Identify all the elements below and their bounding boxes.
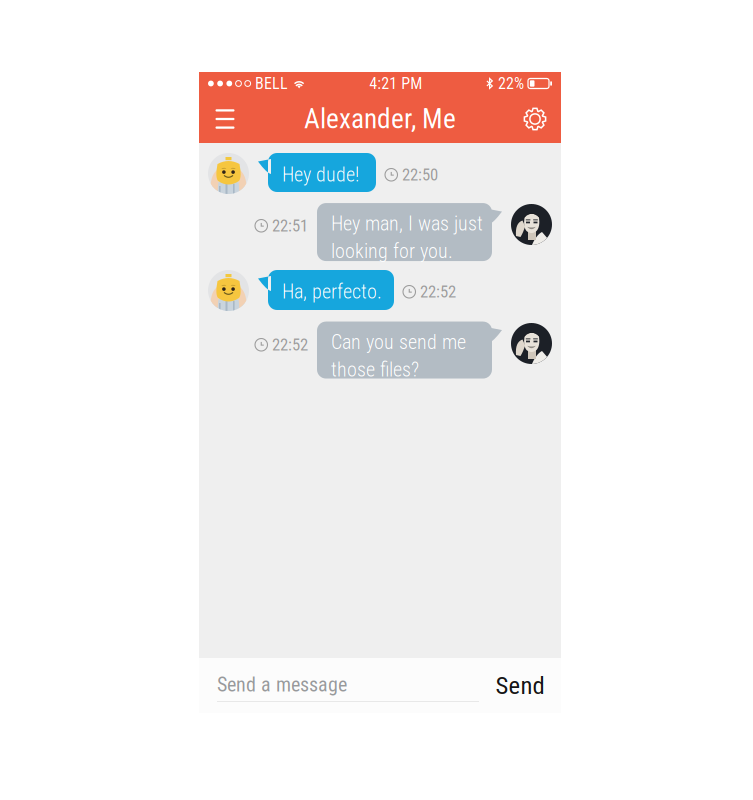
button[interactable]: Send — [479, 658, 561, 713]
staticText: Can you send me — [331, 331, 466, 354]
button[interactable]: Settings — [509, 95, 561, 143]
staticText: Alexander, Me — [304, 103, 456, 135]
staticText: looking for you. — [331, 239, 453, 263]
staticText: Send a message — [217, 673, 347, 696]
staticText: BELL — [255, 74, 288, 93]
staticText: those files? — [331, 358, 419, 381]
staticText: 22% — [498, 74, 524, 93]
staticText: 22:52 — [420, 282, 456, 301]
staticText: Send — [495, 671, 544, 700]
staticText: Hey man, I was just — [331, 212, 483, 235]
staticText: Hey dude! — [282, 163, 359, 186]
staticText: 4:21 PM — [369, 74, 422, 93]
staticText: 22:50 — [402, 165, 438, 184]
staticText: 22:51 — [272, 216, 308, 235]
staticText: 22:52 — [272, 335, 308, 354]
button[interactable]: Menu — [199, 95, 251, 143]
staticText: Ha, perfecto. — [282, 280, 382, 303]
